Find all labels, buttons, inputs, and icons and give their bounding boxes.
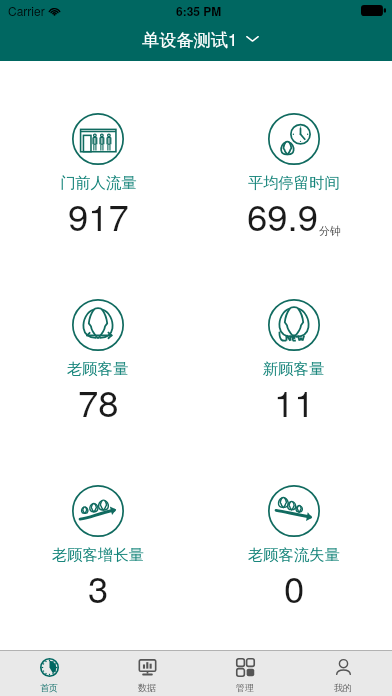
staticText: 917 [68, 189, 129, 241]
button[interactable]: 老顾客增长量 [0, 485, 196, 616]
other: 数据 [138, 658, 157, 677]
button[interactable]: 门前人流量 [0, 113, 196, 244]
staticText: 0 [284, 561, 305, 613]
staticText: 平均停留时间 [248, 173, 340, 192]
button[interactable]: 首页 [0, 651, 98, 696]
staticText: 新顾客量 [263, 359, 325, 378]
other: 首页 [40, 658, 59, 677]
button[interactable]: 老顾客量 [0, 299, 196, 430]
staticText: 6:35 PM [176, 2, 222, 19]
staticText: 78 [78, 375, 119, 427]
staticText: 69.9 [247, 189, 319, 241]
staticText: 管理 [236, 682, 254, 693]
staticText: 老顾客流失量 [248, 545, 340, 564]
button[interactable]: 老顾客流失量 [196, 485, 392, 616]
staticText: 11 [274, 375, 315, 427]
staticText: 老顾客增长量 [52, 545, 144, 564]
staticText: 单设备测试1 [142, 26, 238, 51]
staticText: 首页 [40, 682, 58, 693]
staticText: Carrier [8, 2, 45, 19]
staticText: 门前人流量 [60, 173, 137, 192]
button[interactable]: 单设备测试1 [4, 18, 392, 59]
staticText: 老顾客量 [67, 359, 129, 378]
staticText: 数据 [138, 682, 156, 693]
button[interactable]: 我的 [294, 651, 392, 696]
staticText: 我的 [334, 682, 352, 693]
staticText: 分钟 [319, 224, 341, 238]
button[interactable]: 平均停留时间 [196, 113, 392, 244]
button[interactable]: 新顾客量 [196, 299, 392, 430]
staticText: 3 [88, 561, 109, 613]
button[interactable]: 数据 [98, 651, 196, 696]
other: 管理 [236, 658, 255, 677]
button[interactable]: 管理 [196, 651, 294, 696]
other: 我的 [334, 658, 353, 677]
